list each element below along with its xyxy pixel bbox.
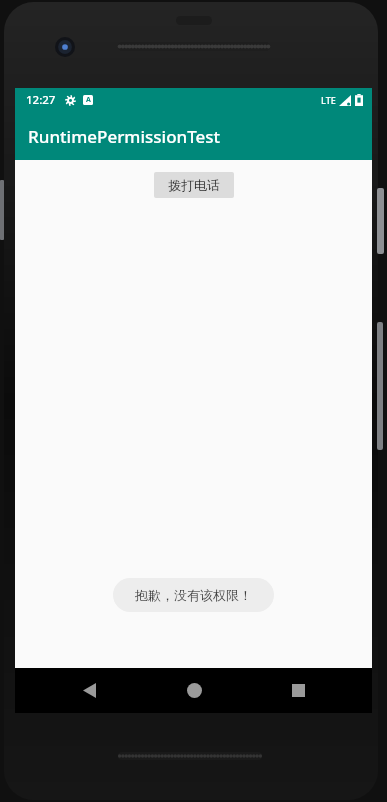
button[interactable]: Recent apps — [268, 668, 328, 713]
staticText: LTE — [321, 94, 336, 106]
button[interactable]: Home — [164, 668, 224, 713]
button[interactable]: Back — [59, 668, 119, 713]
button[interactable]: 拨打电话 — [154, 172, 234, 198]
staticText: 12:27 — [26, 92, 56, 108]
staticText: RuntimePermissionTest — [28, 125, 221, 148]
staticText: A — [86, 95, 91, 105]
staticText: 抱歉，没有该权限！ — [135, 587, 252, 603]
staticText: 拨打电话 — [168, 177, 220, 193]
